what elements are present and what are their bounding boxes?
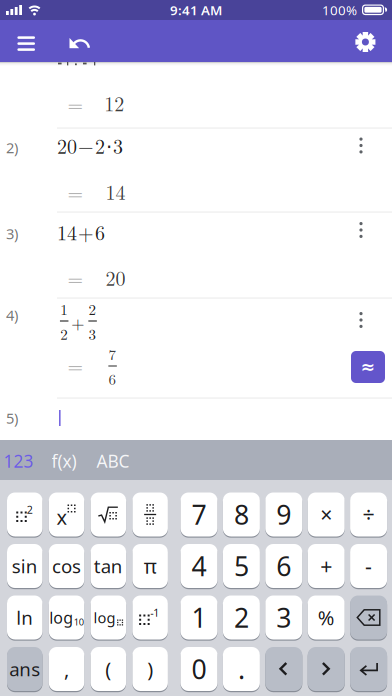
button[interactable]: 20 − 2 ⋅ 3 xyxy=(57,130,377,160)
button[interactable] xyxy=(265,646,302,692)
staticText: 7 xyxy=(191,497,206,532)
staticText: ans xyxy=(9,657,40,681)
staticText: 2 xyxy=(27,502,33,517)
staticText: -1 xyxy=(150,605,159,620)
staticText: 8 xyxy=(234,497,249,532)
button[interactable] xyxy=(10,28,42,60)
staticText: 4) xyxy=(6,305,18,325)
staticText: 123 xyxy=(3,449,33,472)
staticText: + xyxy=(320,552,332,580)
staticText: ABC xyxy=(96,449,129,472)
staticText: ÷ xyxy=(363,500,375,529)
staticText: log xyxy=(49,607,73,628)
staticText: tan xyxy=(94,554,123,578)
staticText: 7 xyxy=(109,343,117,364)
button[interactable] xyxy=(91,491,126,537)
staticText: π xyxy=(144,553,157,579)
button[interactable]: ÷ xyxy=(350,491,387,537)
staticText: 3 xyxy=(276,600,291,635)
staticText: 6 xyxy=(109,368,117,389)
button[interactable]: 2 xyxy=(7,491,42,537)
staticText: 5) xyxy=(6,408,18,428)
button[interactable]: % xyxy=(308,594,345,640)
staticText: = xyxy=(67,263,83,292)
button[interactable] xyxy=(66,35,90,51)
staticText: 1 xyxy=(191,600,206,635)
staticText: sin xyxy=(12,554,38,578)
staticText: 3) xyxy=(6,224,18,243)
staticText: 3 xyxy=(89,323,97,344)
button[interactable]: tan xyxy=(91,543,126,589)
staticText: % xyxy=(318,604,335,631)
staticText: 2 xyxy=(60,323,68,344)
staticText: - xyxy=(365,552,372,580)
button[interactable]: cos xyxy=(49,543,84,589)
button[interactable]: 4 xyxy=(180,543,217,589)
button[interactable]: ans xyxy=(7,646,42,692)
button[interactable]: 2 xyxy=(223,594,260,640)
button[interactable]: - xyxy=(350,543,387,589)
button[interactable]: × xyxy=(308,491,345,537)
button[interactable]: -1 xyxy=(132,594,168,640)
button[interactable] xyxy=(347,306,375,334)
staticText: cos xyxy=(52,554,81,578)
button[interactable]: 6 xyxy=(265,543,302,589)
button[interactable]: 123 xyxy=(0,441,38,481)
staticText: 20 − 2 ⋅ 3 xyxy=(57,131,123,160)
staticText: 2 xyxy=(89,298,97,319)
staticText: 14 xyxy=(105,177,125,206)
button[interactable]: π xyxy=(132,543,168,589)
button[interactable]: f(x) xyxy=(44,441,84,481)
staticText: 2 xyxy=(234,600,249,635)
button[interactable]: ln xyxy=(7,594,42,640)
button[interactable]: . xyxy=(223,646,260,692)
staticText: + xyxy=(71,310,84,335)
button[interactable] xyxy=(350,594,387,640)
button[interactable]: 7 xyxy=(180,491,217,537)
staticText: × xyxy=(320,500,332,529)
staticText: 5 xyxy=(234,548,249,584)
button[interactable]: 9 xyxy=(265,491,302,537)
button[interactable]: 1 xyxy=(180,594,217,640)
button[interactable]: log xyxy=(91,594,126,640)
button[interactable] xyxy=(308,646,345,692)
button[interactable]: 8 xyxy=(223,491,260,537)
button[interactable]: 3 xyxy=(265,594,302,640)
button[interactable]: ABC xyxy=(91,441,135,481)
button[interactable]: ≈ xyxy=(351,351,385,383)
button[interactable]: 14 + 6 xyxy=(57,217,377,247)
staticText: = xyxy=(67,178,83,206)
staticText: f(x) xyxy=(51,449,76,472)
button[interactable] xyxy=(347,216,375,244)
staticText: 2) xyxy=(6,138,18,157)
button[interactable]: 5 xyxy=(223,543,260,589)
button[interactable]: sin xyxy=(7,543,42,589)
staticText: 9 xyxy=(276,497,291,532)
button[interactable] xyxy=(132,491,168,537)
button[interactable]: 0 xyxy=(180,646,217,692)
staticText: 10 xyxy=(74,616,84,628)
button[interactable]: ( xyxy=(91,646,126,692)
staticText: ln xyxy=(16,605,33,630)
staticText: . xyxy=(238,651,245,687)
staticText: = xyxy=(67,89,83,118)
staticText: 12 xyxy=(104,89,124,117)
button[interactable] xyxy=(350,646,387,692)
staticText: 14 + 6 xyxy=(57,218,105,246)
staticText: ) xyxy=(147,656,153,682)
staticText: 4 xyxy=(191,548,206,584)
staticText: 9:41 AM xyxy=(170,1,222,19)
staticText: = xyxy=(67,351,83,379)
button[interactable] xyxy=(355,31,376,52)
staticText: 0 xyxy=(191,651,206,687)
staticText: ( xyxy=(105,656,111,682)
button[interactable]: , xyxy=(49,646,84,692)
button[interactable]: + xyxy=(308,543,345,589)
staticText: x xyxy=(56,504,67,530)
staticText: , xyxy=(64,656,69,682)
button[interactable]: log xyxy=(49,594,84,640)
button[interactable]: ) xyxy=(132,646,168,692)
staticText: 6 xyxy=(276,548,291,584)
button[interactable] xyxy=(347,131,375,159)
button[interactable]: x xyxy=(49,491,84,537)
